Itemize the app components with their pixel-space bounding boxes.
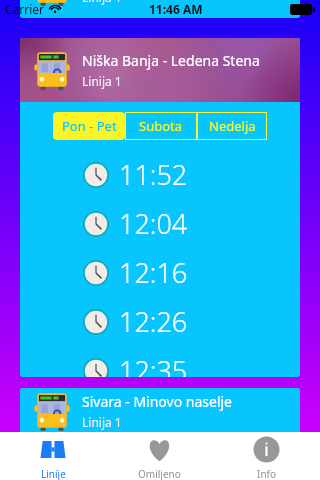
button[interactable]: Subota: [125, 112, 197, 140]
staticText: Sivara - Minovo naselje: [82, 392, 233, 411]
staticText: Omiljeno: [138, 467, 181, 480]
button[interactable]: Pon - Pet: [53, 112, 125, 140]
button[interactable]: Linije: [0, 432, 106, 480]
button[interactable]: 12:35: [20, 346, 300, 377]
button[interactable]: 12:16: [20, 248, 300, 297]
button[interactable]: Nedelja: [197, 112, 267, 140]
staticText: 11:46 AM: [149, 1, 203, 17]
staticText: Linija 1: [82, 73, 122, 89]
staticText: 11:52: [119, 156, 188, 193]
staticText: Pon - Pet: [62, 117, 117, 135]
button[interactable]: Niška Banja - Ledena Stena: [20, 38, 300, 102]
staticText: Linije: [41, 467, 66, 480]
button[interactable]: Niš Ekspres - Centar: [20, 0, 300, 18]
button[interactable]: 12:26: [20, 297, 300, 346]
button[interactable]: 11:52: [20, 150, 300, 199]
staticText: Subota: [139, 117, 183, 135]
staticText: Linija 1: [82, 0, 122, 5]
staticText: Carrier: [5, 1, 45, 17]
button[interactable]: Sivara - Minovo naselje: [20, 388, 300, 434]
staticText: 12:16: [119, 254, 188, 291]
staticText: 12:04: [119, 205, 188, 242]
staticText: Linija 1: [82, 414, 122, 430]
button[interactable]: Omiljeno: [106, 432, 213, 480]
button[interactable]: 12:04: [20, 199, 300, 248]
staticText: Niška Banja - Ledena Stena: [82, 51, 260, 70]
staticText: 12:35: [119, 352, 188, 377]
staticText: 12:26: [119, 303, 188, 340]
staticText: Info: [257, 467, 277, 480]
button[interactable]: Info: [213, 432, 320, 480]
staticText: Nedelja: [209, 117, 256, 135]
